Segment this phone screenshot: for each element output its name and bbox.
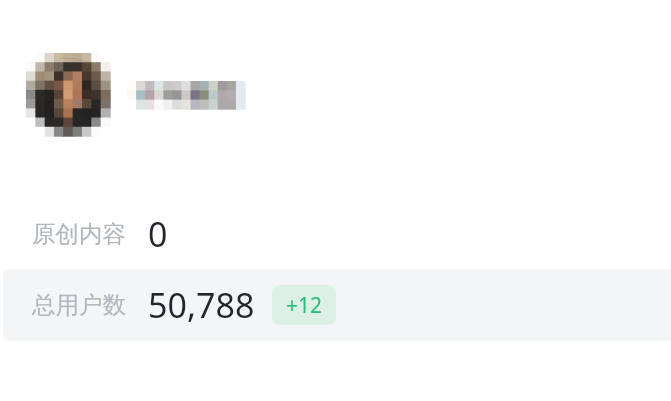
staticText: 50,788 — [148, 282, 255, 328]
button[interactable]: 总用户数 — [3, 269, 671, 341]
staticText: +12 — [286, 291, 323, 320]
button[interactable]: Profile photo — [26, 53, 110, 136]
button[interactable]: 原创内容 — [0, 201, 671, 266]
staticText: 原创内容 — [32, 219, 126, 249]
staticText: 0 — [148, 211, 168, 257]
staticText: 总用户数 — [32, 290, 126, 320]
